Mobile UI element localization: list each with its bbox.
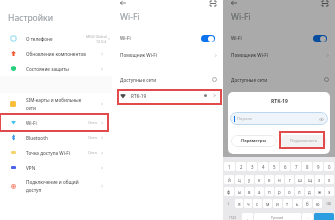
staticText: MIUI Global — [86, 34, 107, 39]
button[interactable]: а — [255, 187, 264, 196]
button[interactable]: щ — [305, 175, 314, 184]
button[interactable]: SIM-карты и мобильные сети — [0, 93, 112, 115]
button[interactable]: ц — [235, 175, 244, 184]
staticText: я — [238, 201, 241, 207]
button[interactable]: . — [302, 213, 313, 220]
staticText: о — [288, 189, 291, 195]
button[interactable]: я — [235, 199, 243, 208]
button[interactable]: ь — [293, 199, 302, 208]
button[interactable]: 9 — [313, 162, 323, 171]
staticText: Помощник Wi-Fi — [231, 52, 269, 58]
button[interactable]: О телефоне — [0, 31, 112, 46]
staticText: с — [256, 201, 259, 207]
staticText: л — [298, 189, 301, 195]
button[interactable]: 5 — [269, 162, 279, 171]
button[interactable]: Подключить — [280, 135, 327, 147]
button[interactable]: Shift — [224, 199, 234, 208]
button[interactable]: Пароль — [230, 112, 328, 125]
button[interactable]: о — [285, 187, 294, 196]
button[interactable]: 2 — [236, 162, 246, 171]
button[interactable]: VPN — [0, 160, 112, 175]
button[interactable]: т — [283, 199, 292, 208]
button[interactable]: Scan QR code — [321, 0, 328, 6]
button[interactable]: н — [275, 175, 284, 184]
button[interactable]: р — [275, 187, 284, 196]
button[interactable]: Русский — [254, 213, 301, 220]
button[interactable]: ы — [235, 187, 244, 196]
staticText: Пароль — [237, 116, 253, 122]
staticText: й — [228, 177, 231, 183]
button[interactable]: Точка доступа Wi-Fi — [0, 145, 112, 160]
button[interactable]: л — [295, 187, 304, 196]
staticText: з — [318, 177, 321, 183]
button[interactable]: и — [273, 199, 282, 208]
button[interactable]: д — [305, 187, 314, 196]
button[interactable]: в — [245, 187, 254, 196]
button[interactable]: Подключение и общий доступ — [0, 175, 112, 197]
button[interactable]: 0 — [324, 162, 334, 171]
staticText: б — [306, 201, 309, 207]
button[interactable]: , — [242, 213, 253, 220]
staticText: 12.0.4 — [96, 39, 107, 44]
button[interactable]: ф — [224, 187, 234, 196]
button[interactable]: RTK-19 — [120, 88, 217, 103]
button[interactable]: 1 — [224, 162, 235, 171]
button[interactable]: Scan QR code — [209, 0, 216, 6]
staticText: н — [278, 177, 281, 183]
button[interactable]: Wi-Fi — [231, 30, 327, 46]
button[interactable]: г — [285, 175, 294, 184]
staticText: Wi-Fi — [26, 120, 37, 126]
button[interactable]: ч — [244, 199, 252, 208]
button[interactable]: Wi-Fi — [0, 115, 112, 130]
staticText: RTK-19 — [131, 93, 147, 99]
button[interactable]: й — [224, 175, 234, 184]
staticText: ж — [318, 189, 322, 195]
staticText: 2 — [240, 164, 243, 170]
staticText: е — [268, 177, 271, 183]
staticText: Параметры — [241, 138, 267, 144]
button[interactable]: с — [253, 199, 262, 208]
staticText: Обновление компонентов — [26, 51, 86, 57]
button[interactable]: ш — [295, 175, 304, 184]
staticText: Доступные сети — [231, 77, 268, 83]
staticText: ы — [238, 189, 242, 195]
button[interactable]: э — [325, 187, 334, 196]
button[interactable]: у — [245, 175, 254, 184]
staticText: 5 — [273, 164, 276, 170]
staticText: Доступные сети — [120, 77, 157, 83]
button[interactable]: Параметры — [231, 135, 277, 147]
button[interactable]: Enter — [314, 213, 334, 220]
button[interactable]: б — [303, 199, 312, 208]
button[interactable]: Помощник Wi-Fi — [120, 46, 218, 64]
button[interactable]: ю — [313, 199, 322, 208]
staticText: 1 — [228, 164, 231, 170]
staticText: 6 — [284, 164, 287, 170]
button[interactable]: Wi-Fi — [120, 30, 215, 46]
button[interactable]: Back — [120, 0, 129, 6]
button[interactable]: 7 — [291, 162, 301, 171]
button[interactable]: 6 — [280, 162, 290, 171]
button[interactable]: х — [325, 175, 334, 184]
button[interactable]: з — [315, 175, 324, 184]
button[interactable]: Numbers — [224, 213, 241, 220]
button[interactable]: Backspace — [323, 199, 334, 208]
button[interactable]: ж — [315, 187, 324, 196]
button[interactable]: Обновление компонентов — [0, 46, 112, 61]
button[interactable]: е — [265, 175, 274, 184]
button[interactable]: Bluetooth — [0, 130, 112, 145]
staticText: р — [278, 189, 281, 195]
button[interactable]: 3 — [247, 162, 257, 171]
staticText: 7 — [295, 164, 298, 170]
button[interactable]: Back — [231, 0, 240, 6]
button[interactable]: м — [263, 199, 272, 208]
staticText: , — [247, 215, 248, 220]
button[interactable]: 8 — [302, 162, 312, 171]
button[interactable]: RTK-19 — [231, 88, 329, 103]
button[interactable]: Помощник Wi-Fi — [231, 46, 330, 64]
button[interactable]: Состояние защиты — [0, 61, 112, 76]
button[interactable]: к — [255, 175, 264, 184]
staticText: в — [248, 189, 251, 195]
staticText: 3 — [251, 164, 254, 170]
button[interactable]: 4 — [258, 162, 268, 171]
button[interactable]: п — [265, 187, 274, 196]
